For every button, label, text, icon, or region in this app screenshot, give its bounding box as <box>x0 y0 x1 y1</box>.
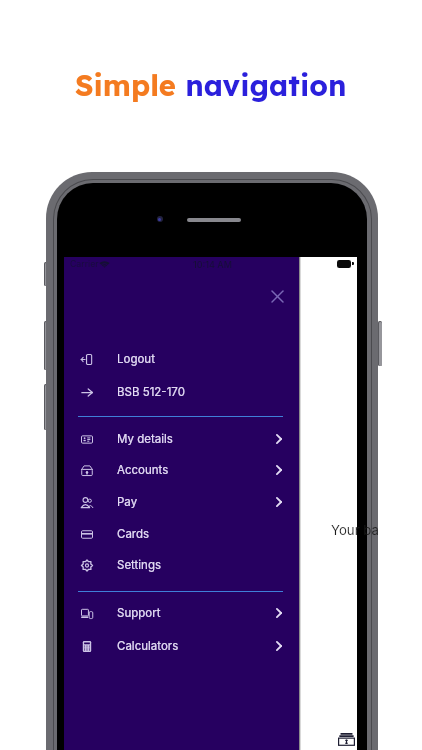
button[interactable]: Close menu <box>265 284 289 308</box>
button[interactable]: My details <box>64 424 299 454</box>
button[interactable]: Cards <box>64 519 299 549</box>
staticText: BSB 512-170 <box>117 385 185 399</box>
button[interactable]: Support <box>64 598 299 628</box>
button[interactable]: Pay <box>64 487 299 517</box>
button[interactable]: Calculators <box>64 631 299 661</box>
button[interactable]: Settings <box>64 550 299 580</box>
staticText: Accounts <box>117 463 169 477</box>
button[interactable]: Logout <box>64 344 299 374</box>
button[interactable]: BSB 512-170 <box>64 377 299 407</box>
button[interactable]: Money <box>336 729 356 749</box>
staticText: My details <box>117 432 173 446</box>
staticText: Simple navigation <box>75 67 347 104</box>
staticText: Your balance <box>331 522 378 538</box>
staticText: Settings <box>117 558 162 572</box>
staticText: Logout <box>117 352 155 366</box>
staticText: Pay <box>117 495 138 509</box>
staticText: Carrier <box>70 259 99 270</box>
staticText: 10:14 AM <box>193 259 232 270</box>
staticText: Support <box>117 606 161 620</box>
staticText: Cards <box>117 527 150 541</box>
button[interactable]: Accounts <box>64 455 299 485</box>
staticText: Calculators <box>117 639 179 653</box>
